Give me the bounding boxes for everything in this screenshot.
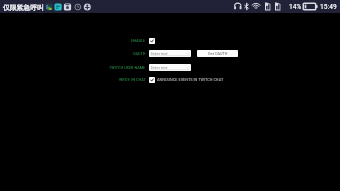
staticText: 15:49 — [320, 2, 337, 11]
staticText: TWITCH USER NAME — [109, 65, 146, 70]
button[interactable]: Get OAUTH — [197, 50, 238, 57]
staticText: ENABLE — [131, 38, 146, 43]
staticText: ANNOUNCE EVENTS IN TWITCH CHAT — [157, 77, 224, 82]
staticText: OAUTH — [133, 51, 146, 56]
button[interactable]: Write in chat — [149, 77, 155, 83]
staticText: WRITE IN CHAT — [119, 77, 146, 82]
staticText: 14% — [289, 2, 302, 11]
button[interactable]: Text input — [149, 64, 191, 71]
staticText: Get OAUTH — [208, 51, 228, 56]
staticText: Enter text — [151, 51, 168, 56]
staticText: 仅限紧急呼叫 — [3, 3, 44, 12]
button[interactable]: Enable — [149, 38, 155, 44]
button[interactable]: Text input — [149, 50, 191, 57]
staticText: Enter text — [151, 65, 168, 70]
